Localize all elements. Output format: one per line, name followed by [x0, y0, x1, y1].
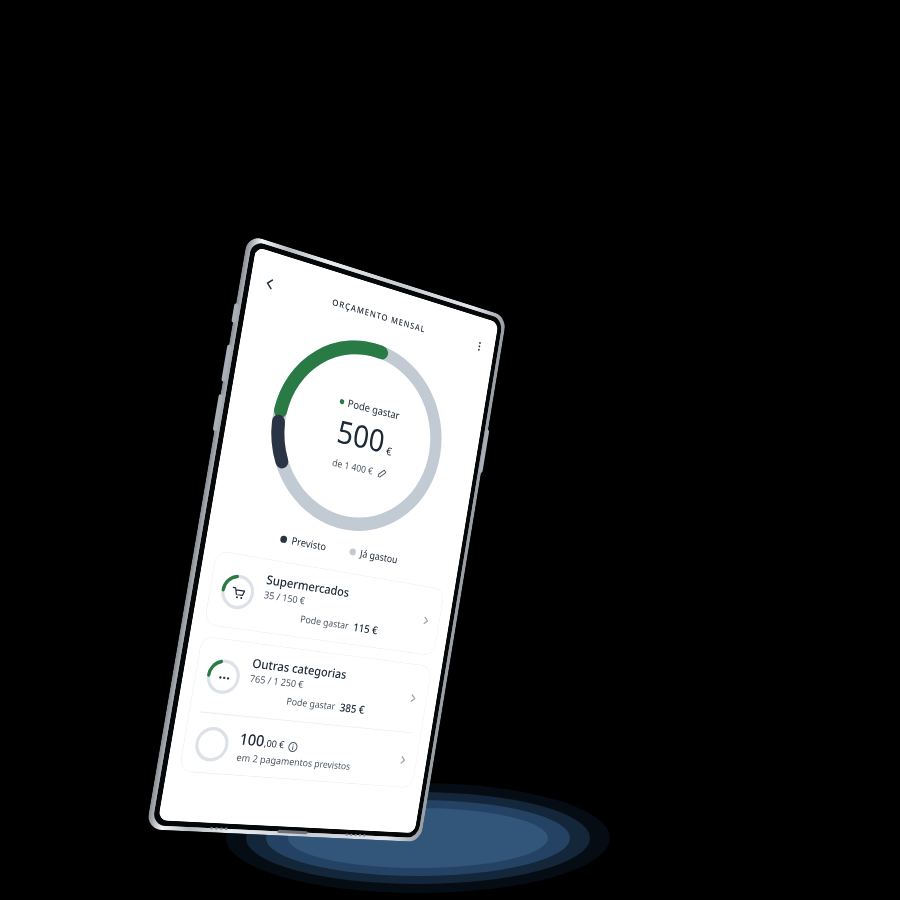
button[interactable]: Back — [254, 266, 284, 300]
staticText: ORÇAMENTO MENSAL — [331, 296, 427, 336]
button[interactable]: Outras categorias — [189, 636, 432, 733]
staticText: Supermercados — [265, 571, 350, 600]
button[interactable]: 100 — [179, 711, 421, 788]
staticText: em 2 pagamentos previstos — [235, 750, 352, 773]
staticText: ,00 € — [263, 736, 286, 751]
staticText: Já gastou — [359, 546, 399, 566]
staticText: Pode gastar — [285, 694, 337, 713]
button[interactable]: Edit budget — [375, 466, 389, 481]
staticText: 115 € — [352, 619, 380, 637]
staticText: Pode gastar — [299, 612, 350, 632]
staticText: Previsto — [290, 533, 328, 554]
staticText: 35 / 150 € — [263, 588, 306, 607]
staticText: Pode gastar — [347, 396, 401, 423]
button[interactable]: More options — [467, 331, 491, 361]
staticText: Outras categorias — [251, 654, 349, 682]
staticText: 100 — [238, 728, 266, 751]
button[interactable]: Information — [287, 742, 298, 752]
staticText: € — [385, 443, 393, 459]
staticText: 765 / 1 250 € — [249, 672, 304, 691]
staticText: de 1 400 € — [331, 456, 374, 477]
button[interactable]: Supermercados — [204, 550, 445, 656]
staticText: 385 € — [339, 699, 366, 717]
staticText: 500 — [334, 409, 389, 462]
